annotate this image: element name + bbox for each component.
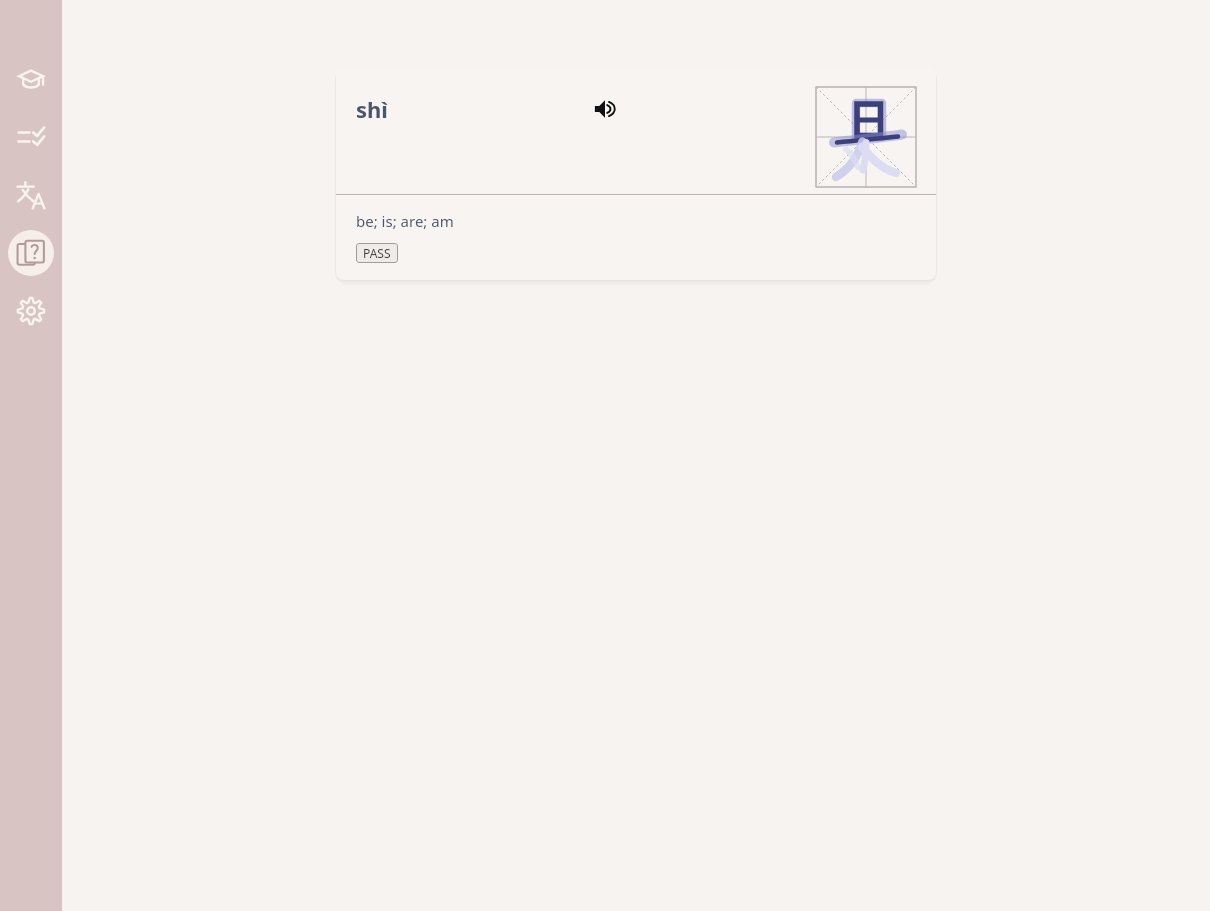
- staticText: shì: [356, 94, 388, 124]
- staticText: PASS: [363, 245, 391, 261]
- button[interactable]: Translate: [8, 172, 54, 218]
- button[interactable]: Flashcards: [8, 230, 54, 276]
- button[interactable]: Settings: [8, 288, 54, 334]
- button[interactable]: Lists: [8, 114, 54, 160]
- button[interactable]: Learn: [8, 56, 54, 102]
- button[interactable]: shì: [336, 66, 936, 280]
- button[interactable]: Play pronunciation: [588, 92, 622, 126]
- button[interactable]: PASS: [356, 243, 398, 263]
- staticText: be; is; are; am: [356, 211, 454, 231]
